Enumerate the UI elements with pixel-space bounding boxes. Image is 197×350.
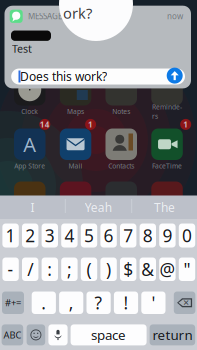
staticText: App Store [14,161,45,171]
button[interactable]: 2 [0,0,197,350]
button[interactable]: & [0,0,197,350]
button[interactable]: 0 [0,0,197,350]
button[interactable]: . [0,0,197,350]
staticText: Does this work? [20,68,107,84]
button[interactable]: 7 [0,0,197,350]
staticText: I [30,199,34,215]
button[interactable]: Send [0,0,197,350]
staticText: 9 [162,224,172,247]
button[interactable]: #+= [0,0,197,350]
staticText: 0 [182,224,192,247]
staticText: 14 [40,119,50,130]
staticText: A [23,131,36,158]
staticText: ) [106,257,111,281]
button[interactable]: Yeah [0,0,197,350]
button[interactable]: 4 [0,0,197,350]
staticText: ork? [63,3,92,23]
staticText: @ [159,257,175,281]
staticText: now [167,11,183,22]
button[interactable]: ? [0,0,197,350]
staticText: 5 [84,224,94,247]
button[interactable]: ( [0,0,197,350]
staticText: The [154,199,175,215]
staticText: 8 [143,224,153,247]
staticText: 1 [6,224,16,247]
staticText: 3 [45,224,55,247]
staticText: Test [12,41,32,56]
staticText: Reminders [152,102,182,121]
staticText: " [183,257,190,281]
staticText: / [27,257,33,281]
button[interactable]: return [0,0,197,350]
staticText: Contacts [108,161,134,171]
staticText: 6 [104,224,114,247]
button[interactable]: @ [0,0,197,350]
button[interactable]: ! [0,0,197,350]
button[interactable]: The [0,0,197,350]
staticText: Mail [68,161,82,171]
staticText: 1 [183,119,188,130]
button[interactable]: space [0,0,197,350]
button[interactable]: Delete [0,0,197,350]
staticText: MESSAGES [28,11,66,22]
button[interactable]: ABC [0,0,197,350]
staticText: : [47,257,52,281]
staticText: . [41,291,46,314]
staticText: & [141,257,154,281]
staticText: 2 [25,224,35,247]
button[interactable]: 5 [0,0,197,350]
button[interactable]: , [0,0,197,350]
button[interactable]: 1 [0,0,197,350]
button[interactable]: / [0,0,197,350]
staticText: 1 [88,119,93,130]
staticText: FaceTime [152,161,182,171]
button[interactable]: - [0,0,197,350]
button[interactable]: Emoji [0,0,197,350]
button[interactable]: ; [0,0,197,350]
staticText: ' [151,291,155,314]
staticText: ( [86,257,91,281]
staticText: #+= [5,296,21,309]
staticText: ? [95,291,103,314]
staticText: 7 [123,224,133,247]
staticText: 4 [64,224,74,247]
button[interactable]: 3 [0,0,197,350]
staticText: Yeah [85,199,112,215]
staticText: ABC [3,328,21,341]
button[interactable]: MESSAGES [0,0,197,350]
button[interactable]: 8 [0,0,197,350]
staticText: ; [67,257,72,281]
button[interactable]: " [0,0,197,350]
button[interactable]: Dictation [0,0,197,350]
staticText: $ [123,257,133,281]
button[interactable]: ) [0,0,197,350]
staticText: ! [123,291,128,314]
staticText: space [91,326,126,344]
staticText: return [152,326,192,344]
button[interactable]: 9 [0,0,197,350]
staticText: , [69,291,74,314]
staticText: Notes [112,107,130,116]
button[interactable]: ' [0,0,197,350]
button[interactable]: : [0,0,197,350]
button[interactable]: $ [0,0,197,350]
button[interactable]: 6 [0,0,197,350]
staticText: - [8,257,14,281]
button[interactable]: I [0,0,197,350]
staticText: Maps [67,107,84,116]
staticText: Clock [21,107,38,116]
staticText: ✕ [183,298,190,307]
